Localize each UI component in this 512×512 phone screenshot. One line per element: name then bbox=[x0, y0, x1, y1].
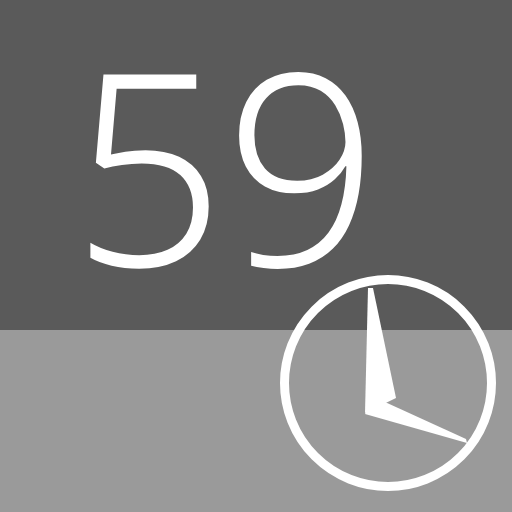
staticText: 59 bbox=[72, 0, 362, 280]
button[interactable]: Clock bbox=[276, 271, 500, 495]
button[interactable]: Timer tile, 59 remaining bbox=[0, 0, 512, 512]
